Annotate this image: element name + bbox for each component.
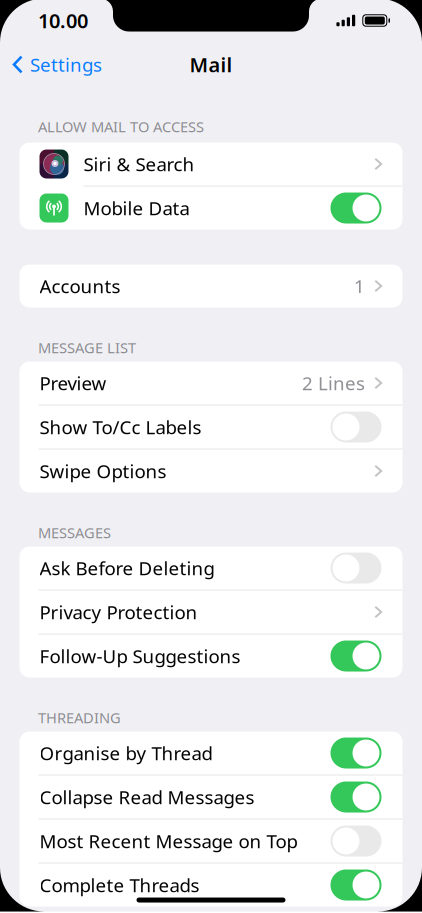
button[interactable]: Settings — [0, 42, 114, 86]
button[interactable]: Complete Threads — [19, 863, 402, 906]
button[interactable]: Mobile Data — [19, 186, 402, 229]
staticText: MESSAGE LIST — [38, 338, 136, 357]
staticText: Ask Before Deleting — [39, 556, 214, 580]
button[interactable]: Privacy Protection — [19, 590, 402, 633]
staticText: Follow-Up Suggestions — [39, 644, 240, 668]
staticText: Collapse Read Messages — [39, 785, 254, 809]
staticText: Organise by Thread — [39, 741, 212, 765]
staticText: Preview — [39, 371, 106, 395]
button[interactable]: Collapse Read Messages — [19, 775, 402, 818]
staticText: Show To/Cc Labels — [39, 415, 201, 439]
button[interactable]: Ask Before Deleting — [19, 546, 402, 589]
button[interactable]: Organise by Thread — [19, 731, 402, 774]
button[interactable]: Most Recent Message on Top — [19, 819, 402, 862]
button[interactable]: Accounts — [19, 264, 402, 307]
staticText: ALLOW MAIL TO ACCESS — [38, 117, 204, 136]
staticText: 1 — [354, 274, 365, 298]
staticText: Swipe Options — [39, 459, 166, 483]
button[interactable]: Follow-Up Suggestions — [19, 634, 402, 677]
staticText: 10.00 — [38, 7, 88, 34]
button[interactable]: Preview — [19, 361, 402, 404]
staticText: Complete Threads — [39, 873, 199, 897]
staticText: MESSAGES — [38, 523, 111, 542]
staticText: Most Recent Message on Top — [39, 829, 297, 853]
button[interactable]: Swipe Options — [19, 449, 402, 492]
staticText: Settings — [30, 52, 102, 77]
staticText: 2 Lines — [302, 371, 365, 395]
staticText: Siri & Search — [83, 152, 194, 176]
staticText: Privacy Protection — [39, 600, 197, 624]
button[interactable]: Show To/Cc Labels — [19, 405, 402, 448]
staticText: THREADING — [38, 708, 121, 727]
button[interactable]: Siri & Search — [19, 142, 402, 185]
staticText: Mobile Data — [83, 196, 189, 220]
staticText: Mail — [189, 51, 232, 78]
staticText: Accounts — [39, 274, 120, 298]
